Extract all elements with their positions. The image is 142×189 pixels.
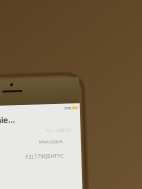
staticText: MNAU2QL/A — [39, 140, 63, 145]
staticText: Urządzenie… — [0, 114, 16, 125]
staticText: F2LT79QSHFYC — [25, 153, 63, 160]
staticText: 77% — [65, 107, 72, 112]
staticText: 16.1.1 (20B101) — [46, 129, 72, 134]
